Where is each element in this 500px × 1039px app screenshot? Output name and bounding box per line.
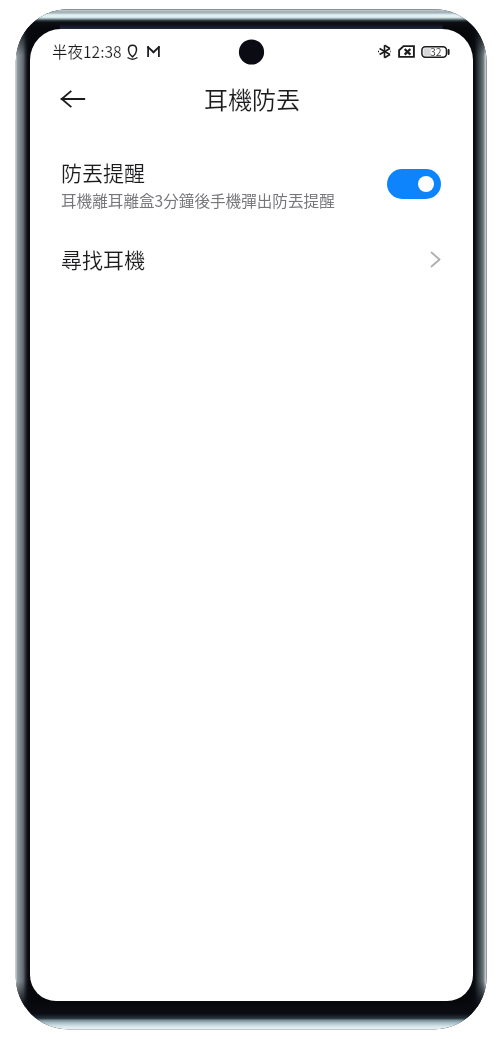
staticText: 耳機離耳離盒3分鐘後手機彈出防丟提醒 — [61, 189, 335, 212]
staticText: 耳機防丟 — [204, 81, 300, 116]
button[interactable]: Back — [52, 80, 94, 122]
button[interactable]: 尋找耳機 — [30, 228, 473, 290]
button[interactable]: 防丟提醒 — [30, 150, 473, 228]
staticText: 尋找耳機 — [61, 244, 430, 274]
staticText: 32 — [430, 44, 442, 59]
staticText: 半夜12:38 — [52, 40, 122, 62]
button[interactable]: Toggle anti-lost alert — [387, 169, 441, 199]
staticText: 防丟提醒 — [61, 157, 145, 187]
